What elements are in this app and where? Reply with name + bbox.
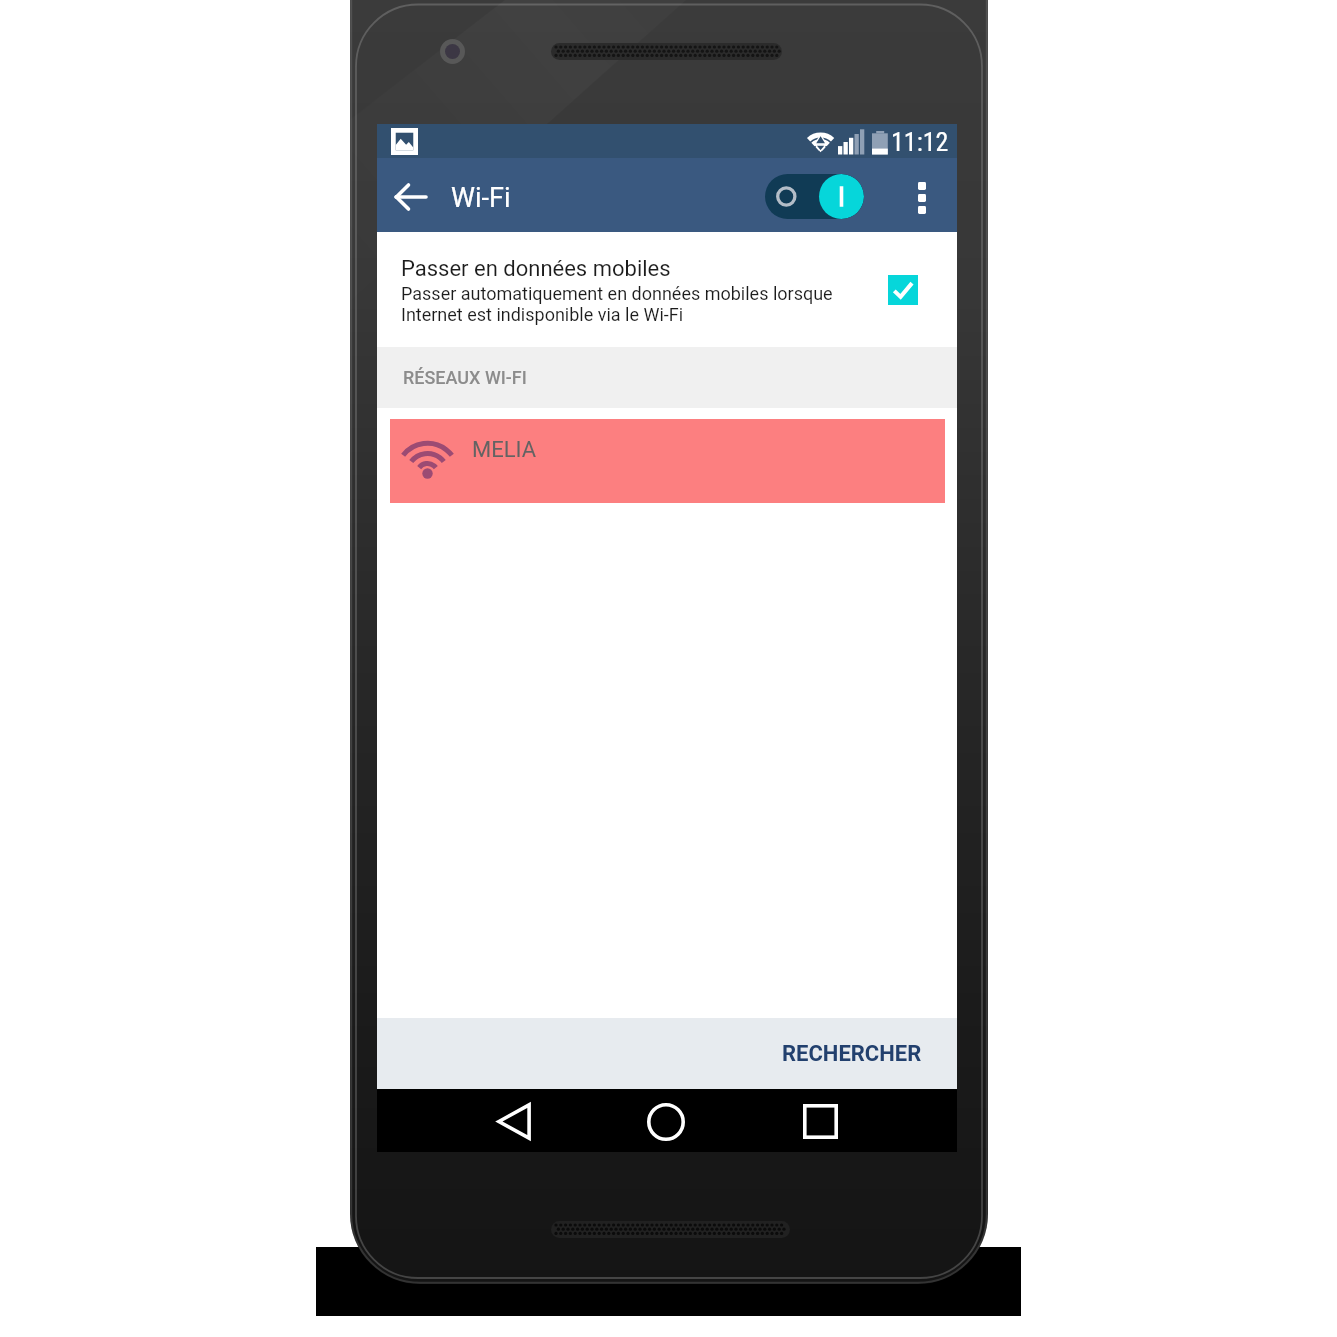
button[interactable]: MELIA: [390, 419, 945, 503]
staticText: MELIA: [472, 437, 537, 463]
button[interactable]: Back: [481, 1089, 547, 1152]
staticText: RECHERCHER: [782, 1041, 922, 1067]
button[interactable]: RECHERCHER: [752, 1018, 957, 1089]
staticText: Passer en données mobiles: [401, 256, 671, 282]
button[interactable]: More options: [900, 158, 944, 232]
button[interactable]: Home: [633, 1089, 699, 1152]
staticText: Passer automatiquement en données mobile…: [401, 283, 833, 325]
button[interactable]: Wi-Fi toggle, on: [765, 174, 864, 219]
button[interactable]: Passer en données mobiles: [377, 232, 957, 347]
button[interactable]: Back: [377, 158, 445, 232]
button[interactable]: Recent apps: [787, 1089, 853, 1152]
staticText: RÉSEAUX WI-FI: [403, 367, 527, 388]
staticText: Wi-Fi: [451, 182, 511, 214]
staticText: 11:12: [891, 127, 949, 157]
